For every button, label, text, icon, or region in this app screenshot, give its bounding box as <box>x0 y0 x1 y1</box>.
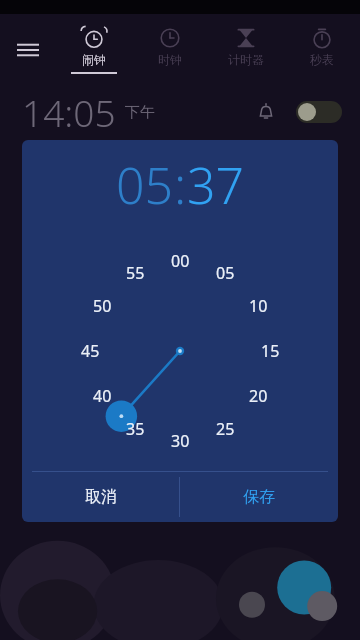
button[interactable]: 取消 <box>22 472 179 522</box>
staticText: 00 <box>171 250 190 272</box>
button[interactable]: 40 <box>22 251 338 451</box>
button[interactable]: 00 <box>22 251 338 451</box>
button[interactable]: 50 <box>22 251 338 451</box>
button[interactable]: 37 <box>187 151 245 219</box>
button[interactable]: 05 <box>22 251 338 451</box>
button[interactable]: 25 <box>22 251 338 451</box>
staticText: 40 <box>93 385 112 407</box>
staticText: 下午 <box>125 103 155 122</box>
button[interactable]: Alarm bell <box>252 98 280 126</box>
staticText: 保存 <box>243 487 275 507</box>
button[interactable]: 35 <box>22 251 338 451</box>
staticText: 55 <box>126 262 145 284</box>
button[interactable]: 00 <box>22 251 338 451</box>
button[interactable]: Toggle alarm <box>296 101 342 123</box>
button[interactable]: 15 <box>22 251 338 451</box>
staticText: 计时器 <box>228 52 264 67</box>
button[interactable]: 时钟 <box>132 14 208 86</box>
staticText: 05 <box>216 262 235 284</box>
staticText: 15 <box>261 340 280 362</box>
staticText: 闹钟 <box>82 52 106 67</box>
staticText: 45 <box>81 340 100 362</box>
button[interactable]: 秒表 <box>284 14 360 86</box>
button[interactable]: 保存 <box>180 472 338 522</box>
button[interactable]: 45 <box>22 251 338 451</box>
button[interactable]: 20 <box>22 251 338 451</box>
staticText: 秒表 <box>310 52 334 67</box>
staticText: 14:05 <box>22 87 116 137</box>
staticText: 20 <box>249 385 268 407</box>
staticText: 50 <box>93 295 112 317</box>
button[interactable]: 05 <box>116 151 174 219</box>
staticText: 35 <box>126 418 145 440</box>
staticText: 25 <box>216 418 235 440</box>
staticText: : <box>174 151 187 219</box>
button[interactable]: 闹钟 <box>56 14 132 86</box>
button[interactable]: 10 <box>22 251 338 451</box>
button[interactable]: 55 <box>22 251 338 451</box>
staticText: 10 <box>249 295 268 317</box>
button[interactable]: 计时器 <box>208 14 284 86</box>
staticText: 30 <box>171 430 190 452</box>
staticText: 时钟 <box>158 52 182 67</box>
button[interactable]: Menu <box>0 14 56 86</box>
staticText: 取消 <box>85 487 117 507</box>
button[interactable]: 30 <box>22 251 338 451</box>
button[interactable]: 14:05 <box>0 86 360 138</box>
